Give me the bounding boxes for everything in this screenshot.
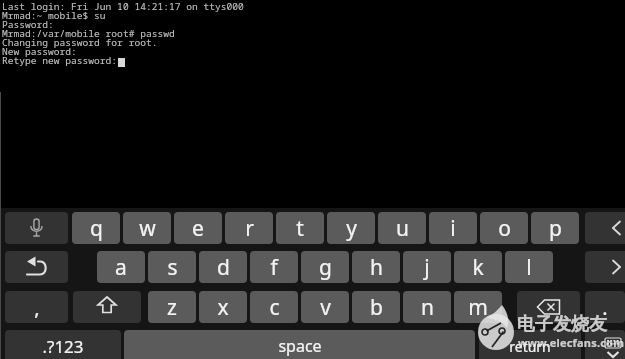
staticText: o <box>498 214 511 243</box>
button[interactable]: n <box>403 291 451 323</box>
button[interactable]: m <box>454 291 502 323</box>
button[interactable]: q <box>72 212 120 244</box>
staticText: a <box>115 253 127 282</box>
staticText: i <box>450 214 456 243</box>
staticText: w <box>139 214 156 243</box>
staticText: space <box>278 335 322 357</box>
button[interactable]: c <box>250 291 298 323</box>
button[interactable]: Dictate <box>5 212 68 244</box>
button[interactable]: , <box>5 291 68 323</box>
button[interactable]: i <box>429 212 477 244</box>
button[interactable]: x <box>199 291 247 323</box>
button[interactable]: h <box>352 251 400 283</box>
staticText: u <box>396 214 409 243</box>
button[interactable]: b <box>352 291 400 323</box>
button[interactable]: Backspace <box>517 291 580 323</box>
button[interactable]: t <box>276 212 324 244</box>
staticText: l <box>526 253 532 282</box>
staticText: q <box>90 214 103 243</box>
button[interactable]: e <box>174 212 222 244</box>
button[interactable]: v <box>301 291 349 323</box>
button[interactable]: a <box>97 251 145 283</box>
staticText: t <box>296 214 304 243</box>
staticText: .?123 <box>42 335 84 358</box>
button[interactable]: w <box>123 212 171 244</box>
button[interactable]: y <box>327 212 375 244</box>
button[interactable]: Undo <box>5 251 68 283</box>
button[interactable]: d <box>199 251 247 283</box>
button[interactable]: r <box>225 212 273 244</box>
staticText: x <box>217 293 229 322</box>
button[interactable]: o <box>480 212 528 244</box>
staticText: f <box>270 253 278 282</box>
staticText: g <box>319 253 332 282</box>
staticText: return <box>509 337 551 356</box>
staticText: r <box>245 214 254 243</box>
button[interactable]: return <box>479 330 581 359</box>
button[interactable]: f <box>250 251 298 283</box>
button[interactable]: space <box>124 330 475 359</box>
staticText: www.elecfans.com <box>518 335 625 350</box>
staticText: Last login: Fri Jun 10 14:21:17 on ttys0… <box>2 0 244 67</box>
staticText: . <box>602 294 608 321</box>
staticText: m <box>468 293 488 322</box>
staticText: e <box>192 214 204 243</box>
staticText: n <box>421 293 434 322</box>
button[interactable]: Right <box>585 251 625 283</box>
button[interactable]: Shift <box>73 291 141 323</box>
button[interactable]: k <box>454 251 502 283</box>
button[interactable]: Hide keyboard <box>585 330 625 359</box>
button[interactable]: . <box>585 291 625 323</box>
button[interactable]: l <box>505 251 553 283</box>
button[interactable]: j <box>403 251 451 283</box>
staticText: s <box>167 253 178 282</box>
button[interactable]: Left <box>585 212 625 244</box>
button[interactable]: p <box>531 212 579 244</box>
staticText: b <box>370 293 383 322</box>
staticText: d <box>217 253 230 282</box>
staticText: c <box>269 293 280 322</box>
button[interactable]: z <box>148 291 196 323</box>
staticText: j <box>424 253 430 282</box>
button[interactable]: .?123 <box>5 330 121 359</box>
staticText: p <box>549 214 562 243</box>
staticText: v <box>320 293 331 322</box>
staticText: z <box>167 293 177 322</box>
staticText: 电子发烧友 <box>517 313 607 336</box>
button[interactable]: u <box>378 212 426 244</box>
button[interactable]: g <box>301 251 349 283</box>
staticText: , <box>34 294 40 321</box>
staticText: y <box>346 214 357 243</box>
button[interactable]: s <box>148 251 196 283</box>
staticText: h <box>370 253 383 282</box>
staticText: k <box>472 253 484 282</box>
